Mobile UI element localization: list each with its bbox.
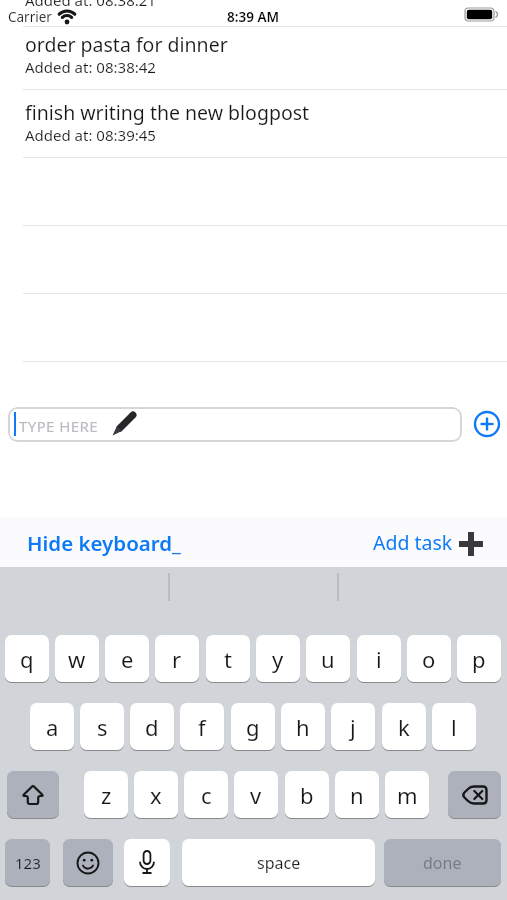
button[interactable]: v xyxy=(234,771,278,818)
staticText: o xyxy=(422,644,436,674)
button[interactable]: h xyxy=(281,703,325,750)
staticText: x xyxy=(150,780,162,810)
staticText: TYPE HERE xyxy=(19,416,98,436)
button[interactable]: Hide keyboard_ xyxy=(27,529,181,557)
staticText: order pasta for dinner xyxy=(25,31,228,58)
staticText: v xyxy=(250,780,262,810)
staticText: u xyxy=(321,644,335,674)
staticText: 123 xyxy=(15,853,41,873)
staticText: j xyxy=(350,712,356,742)
button[interactable] xyxy=(7,771,59,818)
staticText: z xyxy=(101,780,112,810)
staticText: l xyxy=(451,712,457,742)
button[interactable]: Add task xyxy=(373,529,484,556)
staticText: space xyxy=(257,852,301,874)
button[interactable] xyxy=(0,89,507,157)
staticText: n xyxy=(350,780,364,810)
staticText: h xyxy=(296,712,310,742)
staticText: Hide keyboard_ xyxy=(27,529,181,557)
staticText: s xyxy=(97,712,108,742)
staticText: Carrier xyxy=(8,8,52,26)
button[interactable]: n xyxy=(335,771,379,818)
button[interactable]: g xyxy=(231,703,275,750)
button[interactable]: e xyxy=(105,635,149,682)
staticText: c xyxy=(201,780,212,810)
staticText: d xyxy=(145,712,159,742)
staticText: p xyxy=(472,644,486,674)
staticText: Added at: 08:38:42 xyxy=(25,57,156,77)
staticText: m xyxy=(397,780,418,810)
button[interactable]: q xyxy=(5,635,49,682)
button[interactable]: c xyxy=(184,771,228,818)
button[interactable] xyxy=(124,839,170,886)
button[interactable]: d xyxy=(130,703,174,750)
staticText: Added at: 08:39:45 xyxy=(25,125,156,145)
button[interactable]: p xyxy=(457,635,501,682)
button[interactable] xyxy=(448,771,501,818)
staticText: e xyxy=(121,644,134,674)
button[interactable]: t xyxy=(206,635,250,682)
button[interactable] xyxy=(473,410,501,438)
staticText: f xyxy=(198,712,206,742)
button[interactable]: x xyxy=(134,771,178,818)
staticText: i xyxy=(376,644,382,674)
staticText: q xyxy=(20,644,34,674)
button[interactable]: o xyxy=(407,635,451,682)
button[interactable]: r xyxy=(155,635,199,682)
staticText: y xyxy=(272,644,284,674)
button[interactable]: TYPE HERE xyxy=(8,407,462,442)
button[interactable]: j xyxy=(331,703,375,750)
button[interactable]: k xyxy=(382,703,426,750)
staticText: Added at: 08:38:21 xyxy=(25,0,156,10)
button[interactable]: b xyxy=(285,771,329,818)
button[interactable] xyxy=(63,839,113,886)
staticText: a xyxy=(46,712,59,742)
staticText: g xyxy=(246,712,260,742)
staticText: t xyxy=(224,644,232,674)
staticText: finish writing the new blogpost xyxy=(25,99,310,126)
staticText: 8:39 AM xyxy=(227,8,280,26)
button[interactable]: 123 xyxy=(5,839,50,886)
staticText: r xyxy=(172,644,182,674)
button[interactable]: a xyxy=(30,703,74,750)
button[interactable]: space xyxy=(182,839,375,886)
staticText: w xyxy=(68,644,86,674)
button[interactable]: done xyxy=(384,839,501,886)
staticText: b xyxy=(300,780,314,810)
button[interactable]: f xyxy=(180,703,224,750)
staticText: done xyxy=(423,852,462,874)
button[interactable]: l xyxy=(432,703,476,750)
button[interactable]: u xyxy=(306,635,350,682)
button[interactable]: i xyxy=(357,635,401,682)
button[interactable]: s xyxy=(80,703,124,750)
button[interactable]: w xyxy=(55,635,99,682)
staticText: k xyxy=(398,712,410,742)
button[interactable]: z xyxy=(84,771,128,818)
staticText: Add task xyxy=(373,529,453,556)
button[interactable] xyxy=(0,21,507,89)
button[interactable]: y xyxy=(256,635,300,682)
button[interactable]: m xyxy=(385,771,429,818)
